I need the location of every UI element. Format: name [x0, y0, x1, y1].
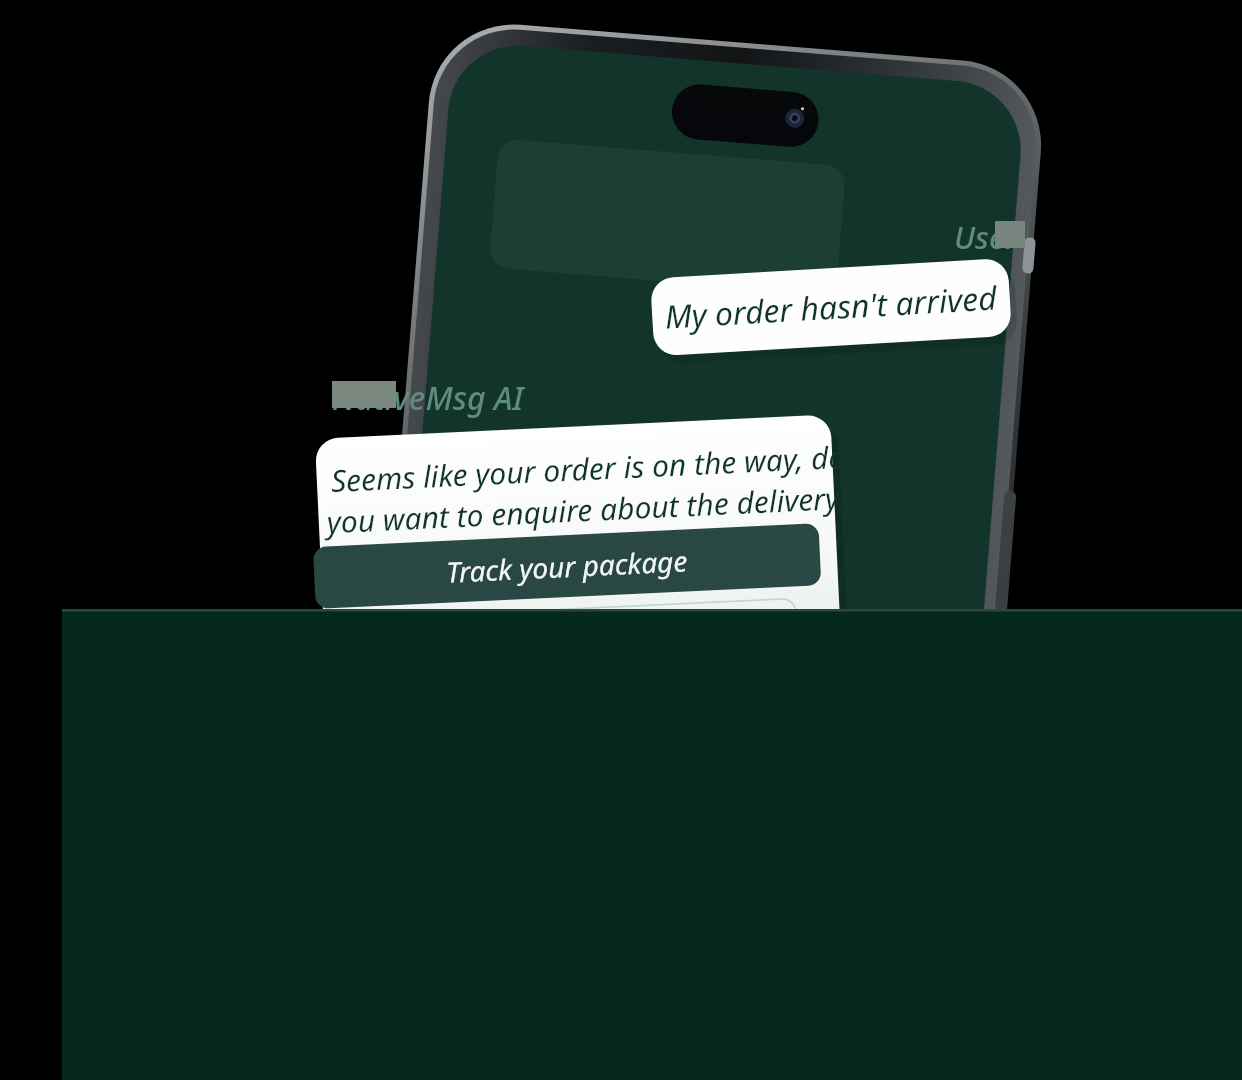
button[interactable]: NativeMsg AI suggestion preview — [0, 0, 1242, 1080]
